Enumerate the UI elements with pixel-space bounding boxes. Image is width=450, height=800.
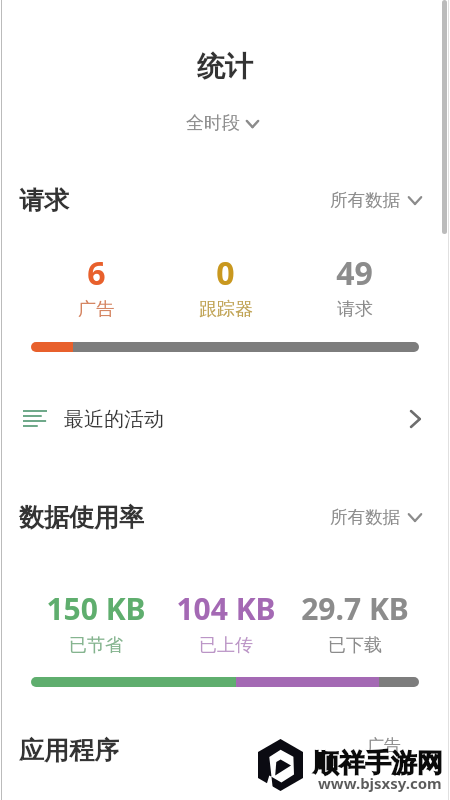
staticText: 最近的活动 [64, 407, 164, 432]
staticText: 请求 [337, 298, 373, 321]
staticText: 所有数据 [330, 189, 400, 211]
staticText: 0 [216, 251, 235, 295]
staticText: 顺祥手游网 [313, 747, 443, 780]
staticText: 150 KB [46, 588, 146, 629]
button[interactable]: 所有数据 [330, 184, 422, 216]
button[interactable]: 所有数据 [330, 501, 422, 533]
staticText: 跟踪器 [199, 298, 253, 321]
staticText: 6 [87, 251, 106, 295]
staticText: 应用程序 [19, 735, 119, 766]
staticText: 104 KB [176, 588, 276, 629]
staticText: 49 [336, 251, 373, 295]
staticText: 29.7 KB [301, 588, 409, 629]
staticText: 已下载 [328, 634, 382, 657]
staticText: 广告 [367, 735, 401, 756]
staticText: 广告 [78, 298, 114, 321]
button[interactable]: 最近的活动 [0, 398, 450, 440]
staticText: 已上传 [199, 634, 253, 657]
staticText: 数据使用率 [19, 502, 144, 533]
staticText: www.bjsxsy.com [318, 773, 442, 793]
staticText: 全时段 [186, 112, 240, 135]
button[interactable]: 全时段 [180, 110, 265, 137]
staticText: 请求 [19, 185, 69, 216]
staticText: 所有数据 [330, 506, 400, 528]
staticText: 统计 [197, 49, 253, 84]
staticText: 已节省 [69, 634, 123, 657]
